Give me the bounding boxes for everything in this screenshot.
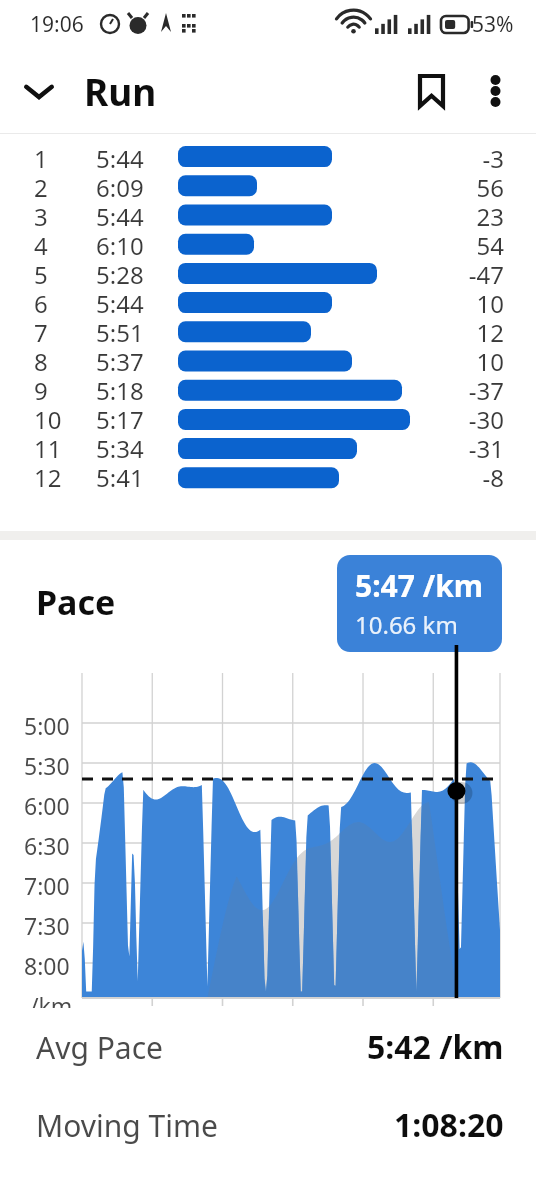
staticText: -8 (482, 461, 504, 490)
staticText: 5 (34, 258, 48, 287)
staticText: /km (30, 990, 73, 1008)
button[interactable]: 5:47 /km (337, 555, 502, 652)
button[interactable]: 5 (0, 258, 536, 287)
staticText: 10 (34, 403, 62, 432)
staticText: 6:00 (24, 790, 70, 821)
staticText: 5:44 (96, 200, 144, 229)
staticText: 7:00 (24, 870, 70, 901)
staticText: -30 (468, 403, 504, 432)
button[interactable]: 1 (0, 142, 536, 171)
button[interactable]: Collapse (8, 60, 70, 122)
staticText: 53% (472, 10, 514, 39)
button[interactable]: 10 (0, 403, 536, 432)
staticText: 5:51 (96, 316, 144, 345)
button[interactable]: 4 (0, 229, 536, 258)
staticText: 19:06 (30, 10, 84, 39)
staticText: 5:42 /km (367, 1025, 504, 1069)
staticText: 10 (476, 345, 504, 374)
button[interactable]: 12 (0, 461, 536, 490)
staticText: 6:10 (96, 229, 144, 258)
staticText: 3 (34, 200, 48, 229)
staticText: 11 (34, 432, 62, 461)
staticText: 8 (34, 345, 48, 374)
staticText: Avg Pace (36, 1027, 163, 1068)
staticText: 5:44 (96, 142, 144, 171)
button[interactable]: Moving Time (0, 1086, 536, 1164)
staticText: 5:47 /km (355, 565, 484, 606)
staticText: 5:28 (96, 258, 144, 287)
staticText: 7:30 (24, 910, 70, 941)
button[interactable]: 8 (0, 345, 536, 374)
button[interactable]: 9 (0, 374, 536, 403)
button[interactable]: More options (466, 62, 524, 120)
staticText: 12 (476, 316, 504, 345)
staticText: -37 (468, 374, 504, 403)
staticText: 5:41 (96, 461, 144, 490)
staticText: 4 (34, 229, 48, 258)
staticText: 56 (476, 171, 504, 200)
button[interactable]: Bookmark (400, 60, 462, 122)
button[interactable]: 7 (0, 316, 536, 345)
staticText: 2 (34, 171, 48, 200)
staticText: 6:09 (96, 171, 144, 200)
button[interactable]: Avg Pace (0, 1008, 536, 1086)
staticText: 12 (34, 461, 62, 490)
staticText: 6 (34, 287, 48, 316)
staticText: -31 (468, 432, 504, 461)
staticText: Moving Time (36, 1105, 218, 1146)
staticText: 8:00 (24, 950, 70, 981)
staticText: 10 (476, 287, 504, 316)
button[interactable]: 3 (0, 200, 536, 229)
staticText: 5:30 (24, 750, 70, 781)
button[interactable]: 11 (0, 432, 536, 461)
staticText: 54 (476, 229, 504, 258)
staticText: -3 (482, 142, 504, 171)
button[interactable]: 2 (0, 171, 536, 200)
staticText: 10.66 km (355, 608, 458, 641)
staticText: 1:08:20 (394, 1103, 504, 1147)
staticText: 7 (34, 316, 48, 345)
staticText: 5:34 (96, 432, 144, 461)
staticText: 9 (34, 374, 48, 403)
staticText: 6:30 (24, 830, 70, 861)
button[interactable]: 6 (0, 287, 536, 316)
staticText: Run (84, 66, 157, 116)
staticText: 1 (34, 142, 48, 171)
staticText: 5:00 (24, 710, 70, 741)
staticText: 5:17 (96, 403, 144, 432)
staticText: 5:37 (96, 345, 144, 374)
staticText: Pace (36, 579, 116, 625)
staticText: 23 (476, 200, 504, 229)
staticText: 5:44 (96, 287, 144, 316)
staticText: 5:18 (96, 374, 144, 403)
staticText: -47 (468, 258, 504, 287)
